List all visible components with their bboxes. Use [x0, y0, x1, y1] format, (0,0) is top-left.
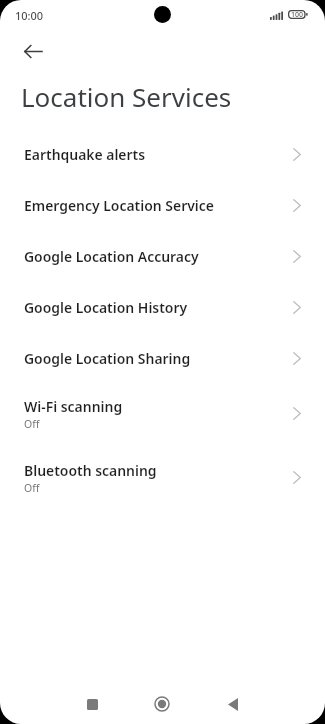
- button[interactable]: Google Location Accuracy: [0, 234, 325, 285]
- staticText: Earthquake alerts: [24, 145, 146, 164]
- button[interactable]: Back: [211, 682, 255, 724]
- staticText: Location Services: [21, 79, 232, 114]
- button[interactable]: Bluetooth scanning: [0, 448, 325, 512]
- other: Battery 100 percent: [288, 10, 308, 20]
- button[interactable]: Wi-Fi scanning: [0, 384, 325, 448]
- staticText: Google Location History: [24, 298, 188, 317]
- other: Mobile signal full: [270, 11, 283, 20]
- staticText: Bluetooth scanning: [24, 461, 157, 480]
- staticText: Wi-Fi scanning: [24, 397, 123, 416]
- staticText: 10:00: [15, 8, 44, 23]
- staticText: Google Location Sharing: [24, 349, 191, 368]
- button[interactable]: Recent apps: [70, 682, 114, 724]
- staticText: Off: [24, 481, 40, 495]
- staticText: 100: [291, 10, 304, 20]
- staticText: Google Location Accuracy: [24, 247, 199, 266]
- button[interactable]: Emergency Location Service: [0, 183, 325, 234]
- button[interactable]: Earthquake alerts: [0, 132, 325, 183]
- button[interactable]: Navigate up: [13, 31, 53, 71]
- button[interactable]: Home: [140, 682, 184, 724]
- staticText: Emergency Location Service: [24, 196, 214, 215]
- button[interactable]: Google Location History: [0, 285, 325, 336]
- button[interactable]: Google Location Sharing: [0, 336, 325, 387]
- staticText: Off: [24, 417, 40, 431]
